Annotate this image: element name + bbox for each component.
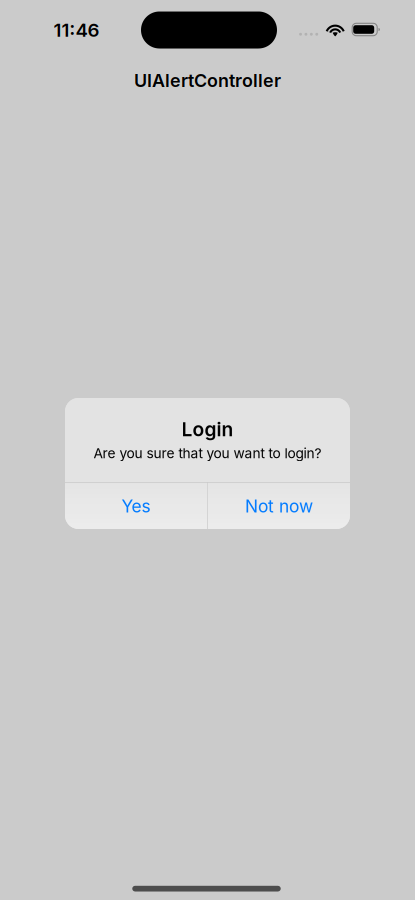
staticText: 11:46 <box>53 19 99 41</box>
staticText: Yes <box>121 496 150 517</box>
button[interactable]: Not now <box>208 483 350 529</box>
staticText: Are you sure that you want to login? <box>93 445 321 461</box>
staticText: Login <box>181 418 233 441</box>
button[interactable]: Yes <box>65 483 207 529</box>
staticText: UIAlertController <box>134 70 281 91</box>
staticText: Not now <box>245 496 313 517</box>
